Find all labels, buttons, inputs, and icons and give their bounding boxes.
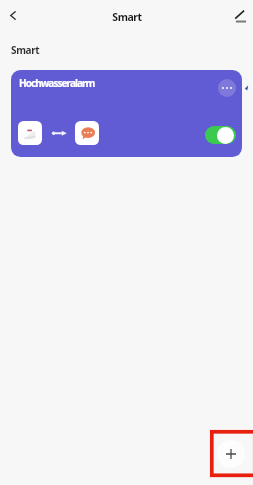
staticText: Smart	[11, 43, 40, 57]
button[interactable]: Toggle automation	[205, 126, 236, 144]
button[interactable]: Back	[1, 3, 25, 27]
button[interactable]: Hochwasseralarm	[11, 70, 242, 157]
button[interactable]: Add	[217, 440, 245, 468]
button[interactable]: Edit	[228, 4, 252, 28]
button[interactable]: More options	[218, 79, 236, 97]
staticText: Smart	[112, 10, 142, 24]
staticText: Hochwasseralarm	[19, 76, 95, 90]
